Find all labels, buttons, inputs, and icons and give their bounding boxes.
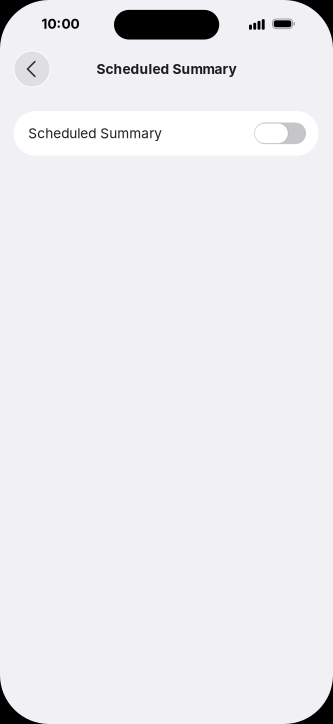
button[interactable]: Back xyxy=(14,51,50,87)
staticText: Scheduled Summary xyxy=(97,61,237,77)
staticText: Scheduled Summary xyxy=(28,125,162,142)
staticText: 10:00 xyxy=(42,16,80,32)
button[interactable]: Scheduled Summary xyxy=(13,111,319,156)
